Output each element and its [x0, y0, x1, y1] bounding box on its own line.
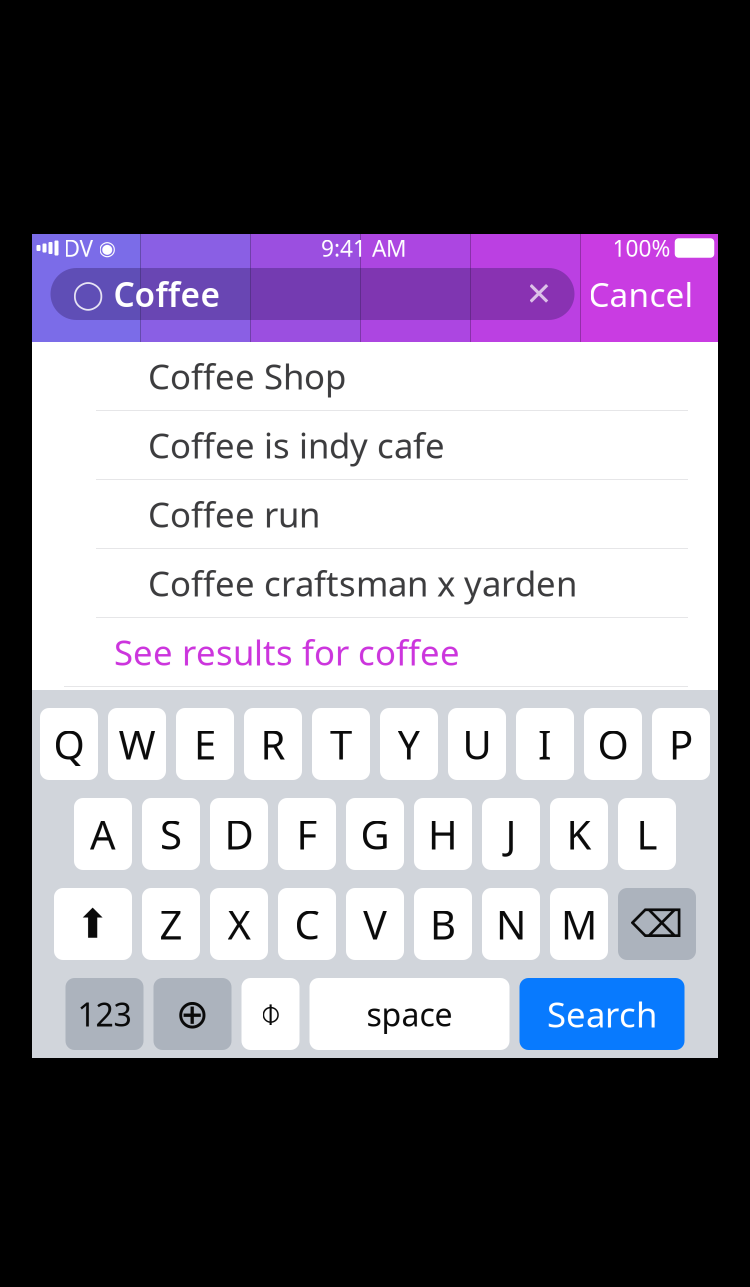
staticText: ⌽ — [259, 996, 281, 1032]
button[interactable]: R — [244, 708, 302, 780]
staticText: O — [597, 717, 628, 770]
button[interactable]: P — [652, 708, 710, 780]
button[interactable]: Z — [142, 888, 200, 960]
staticText: T — [330, 717, 352, 770]
button[interactable]: J — [482, 798, 540, 870]
staticText: See results for coffee — [114, 629, 460, 675]
button[interactable]: See results for coffee — [32, 618, 718, 687]
staticText: Coffee is indy cafe — [148, 422, 445, 468]
staticText: Coffee run — [148, 491, 320, 537]
button[interactable]: ⊕ — [153, 978, 231, 1050]
button[interactable]: B — [414, 888, 472, 960]
button[interactable]: Coffee Shop — [32, 342, 718, 411]
staticText: Coffee craftsman x yarden — [148, 560, 577, 606]
staticText: D — [224, 807, 253, 860]
staticText: R — [260, 717, 285, 770]
button[interactable]: W — [108, 708, 166, 780]
button[interactable]: E — [176, 708, 234, 780]
button[interactable]: G — [346, 798, 404, 870]
button[interactable]: V — [346, 888, 404, 960]
staticText: P — [669, 717, 693, 770]
staticText: ⬆ — [76, 901, 110, 947]
button[interactable]: I — [516, 708, 574, 780]
button[interactable]: K — [550, 798, 608, 870]
staticText: space — [366, 993, 452, 1035]
staticText: ✕ — [525, 276, 552, 312]
button[interactable]: F — [278, 798, 336, 870]
button[interactable]: ⬆ — [54, 888, 132, 960]
button[interactable]: H — [414, 798, 472, 870]
staticText: DV — [63, 233, 93, 263]
staticText: C — [294, 897, 319, 950]
button[interactable]: ◯ — [50, 268, 574, 320]
staticText: ⌫ — [630, 903, 683, 945]
button[interactable]: 123 — [65, 978, 143, 1050]
button[interactable]: X — [210, 888, 268, 960]
button[interactable]: Coffee run — [32, 480, 718, 549]
button[interactable]: C — [278, 888, 336, 960]
staticText: Cancel — [588, 272, 693, 316]
staticText: U — [462, 717, 491, 770]
button[interactable]: ⌫ — [618, 888, 696, 960]
button[interactable]: T — [312, 708, 370, 780]
button[interactable]: ⌽ — [241, 978, 299, 1050]
button[interactable]: N — [482, 888, 540, 960]
staticText: N — [496, 897, 526, 950]
staticText: K — [566, 807, 591, 860]
button[interactable]: Coffee craftsman x yarden — [32, 549, 718, 618]
staticText: 123 — [77, 993, 131, 1035]
staticText: B — [430, 897, 456, 950]
staticText: ⊕ — [175, 991, 209, 1037]
staticText: H — [428, 807, 458, 860]
staticText: E — [194, 717, 216, 770]
button[interactable]: Cancel — [582, 268, 699, 320]
staticText: J — [505, 807, 516, 860]
button[interactable]: U — [448, 708, 506, 780]
staticText: L — [636, 807, 657, 860]
staticText: Z — [159, 897, 182, 950]
button[interactable]: Search — [519, 978, 684, 1050]
button[interactable]: S — [142, 798, 200, 870]
button[interactable]: Q — [40, 708, 98, 780]
staticText: Q — [53, 717, 84, 770]
button[interactable]: Coffee is indy cafe — [32, 411, 718, 480]
button[interactable]: A — [74, 798, 132, 870]
staticText: Coffee Shop — [148, 353, 346, 399]
button[interactable]: Y — [380, 708, 438, 780]
staticText: I — [538, 717, 552, 770]
staticText: S — [160, 807, 182, 860]
staticText: 100% — [612, 233, 670, 263]
staticText: G — [360, 807, 389, 860]
staticText: ◯ — [72, 278, 103, 310]
staticText: Search — [547, 991, 657, 1037]
staticText: X — [227, 897, 250, 950]
staticText: M — [561, 897, 597, 950]
staticText: A — [90, 807, 116, 860]
staticText: F — [296, 807, 317, 860]
button[interactable]: O — [584, 708, 642, 780]
button[interactable]: space — [309, 978, 509, 1050]
staticText: Coffee — [113, 272, 220, 316]
button[interactable]: D — [210, 798, 268, 870]
staticText: Y — [397, 717, 420, 770]
button[interactable]: M — [550, 888, 608, 960]
staticText: 9:41 AM — [321, 233, 407, 263]
staticText: W — [118, 717, 155, 770]
button[interactable]: L — [618, 798, 676, 870]
staticText: V — [363, 897, 387, 950]
staticText: ◉ — [98, 237, 115, 259]
